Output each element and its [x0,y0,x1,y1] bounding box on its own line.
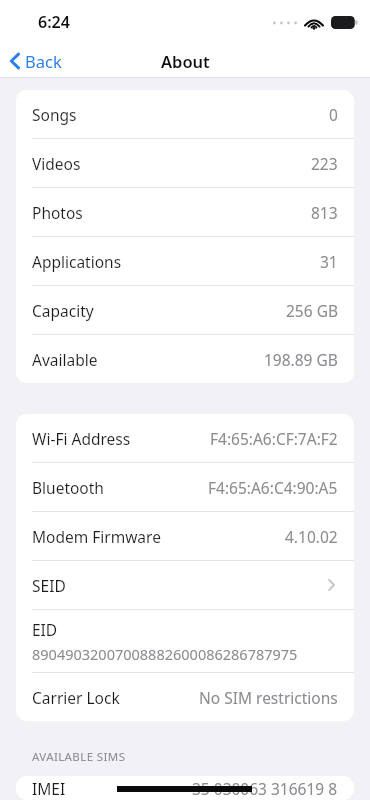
button[interactable]: Carrier Lock [16,673,354,721]
button[interactable]: Available [16,335,354,383]
staticText: Wi-Fi Address [32,428,131,449]
staticText: 223 [311,153,338,174]
button[interactable]: SEID [16,561,354,610]
staticText: 4.10.02 [285,526,338,547]
button[interactable]: Videos [16,139,354,188]
button[interactable]: Bluetooth [16,463,354,512]
button[interactable]: Songs [16,90,354,139]
staticText: F4:65:A6:CF:7A:F2 [210,428,338,449]
staticText: 813 [311,202,338,223]
button[interactable]: Back [0,45,74,77]
staticText: 256 GB [286,300,338,321]
staticText: Songs [32,104,77,125]
staticText: Bluetooth [32,477,104,498]
button[interactable]: IMEI [16,776,354,800]
staticText: AVAILABLE SIMS [32,749,126,765]
staticText: 35 030063 316619 8 [192,778,338,799]
staticText: Back [25,50,62,72]
other: Open SEID [328,579,335,591]
staticText: Modem Firmware [32,526,161,547]
staticText: About [161,50,210,72]
button[interactable]: Modem Firmware [16,512,354,561]
staticText: No SIM restrictions [199,687,338,708]
staticText: 198.89 GB [264,349,338,370]
staticText: F4:65:A6:C4:90:A5 [208,477,338,498]
staticText: 31 [320,251,338,272]
button[interactable]: Capacity [16,286,354,335]
staticText: Available [32,349,98,370]
staticText: Capacity [32,300,94,321]
staticText: EID [32,619,58,640]
button[interactable]: Photos [16,188,354,237]
staticText: Photos [32,202,83,223]
button[interactable]: EID [16,610,354,673]
button[interactable]: Applications [16,237,354,286]
staticText: Videos [32,153,81,174]
staticText: IMEI [32,778,66,799]
staticText: SEID [32,575,66,596]
staticText: Applications [32,251,122,272]
staticText: Carrier Lock [32,687,120,708]
staticText: 6:24 [38,11,70,33]
staticText: 89049032007008882600086286787975 [32,644,298,664]
button[interactable]: Wi-Fi Address [16,414,354,463]
staticText: 0 [329,104,338,125]
